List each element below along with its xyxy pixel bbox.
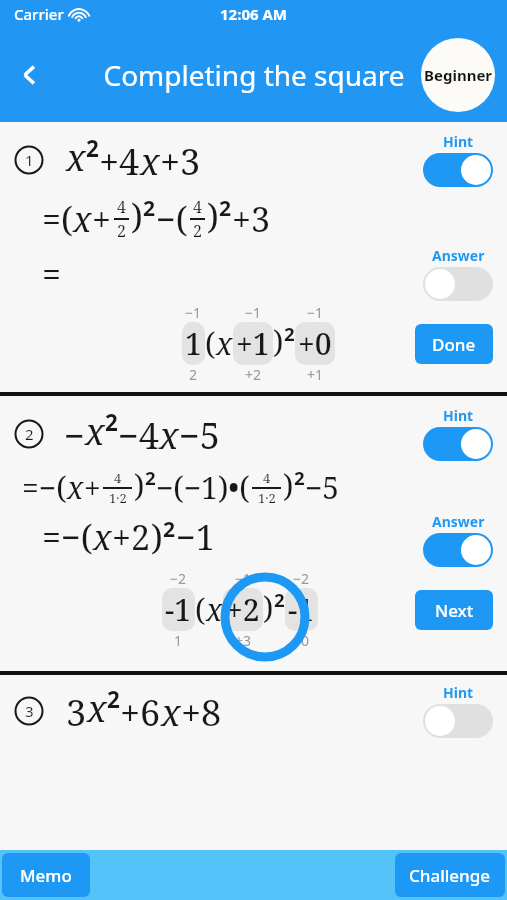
button[interactable]: Hint: [423, 153, 493, 187]
button[interactable]: +1: [233, 322, 273, 365]
staticText: Answer: [432, 246, 485, 265]
staticText: +2: [112, 514, 151, 560]
staticText: Memo: [20, 864, 72, 887]
staticText: x: [216, 323, 233, 364]
staticText: 2: [25, 424, 34, 444]
button[interactable]: -1: [162, 588, 195, 631]
staticText: =(: [42, 196, 73, 242]
staticText: =−(: [22, 467, 67, 508]
staticText: Challenge: [409, 864, 491, 887]
staticText: x: [85, 407, 105, 456]
staticText: Next: [435, 599, 474, 622]
staticText: 2: [143, 193, 156, 222]
staticText: x: [161, 688, 181, 737]
staticText: ): [207, 193, 219, 239]
staticText: −1: [235, 569, 252, 588]
staticText: 2: [86, 133, 99, 163]
staticText: +3: [160, 137, 201, 186]
staticText: 2: [189, 365, 198, 384]
button[interactable]: Challenge: [395, 853, 505, 897]
staticText: −4: [118, 411, 159, 460]
staticText: Beginner: [424, 65, 493, 85]
staticText: Answer: [432, 512, 485, 531]
button[interactable]: Hint: [423, 427, 493, 461]
staticText: =: [42, 251, 62, 297]
staticText: +3: [232, 196, 271, 242]
staticText: 2: [145, 465, 156, 490]
staticText: x: [87, 684, 107, 733]
staticText: =−(: [42, 514, 93, 560]
button[interactable]: 1: [182, 322, 205, 365]
staticText: ): [151, 514, 163, 560]
staticText: 3: [25, 701, 34, 721]
staticText: x: [67, 467, 84, 508]
staticText: x: [140, 137, 160, 186]
staticText: +3: [235, 631, 252, 650]
staticText: 2: [107, 684, 120, 714]
staticText: −2: [170, 569, 187, 588]
button[interactable]: Hint: [423, 704, 493, 738]
staticText: −5: [179, 411, 220, 460]
staticText: −1: [307, 303, 324, 322]
staticText: -1: [165, 589, 192, 630]
button[interactable]: Back: [8, 53, 52, 97]
staticText: Done: [432, 333, 476, 356]
staticText: Hint: [443, 683, 474, 702]
staticText: Hint: [443, 132, 474, 151]
staticText: 2: [294, 465, 305, 490]
staticText: ): [273, 321, 284, 362]
button[interactable]: Beginner: [421, 38, 495, 112]
staticText: 2: [274, 587, 285, 612]
staticText: 1: [25, 150, 34, 170]
staticText: +1: [307, 365, 324, 384]
staticText: +1: [236, 323, 270, 364]
staticText: 1·2: [109, 489, 127, 507]
staticText: Carrier: [14, 4, 64, 24]
staticText: −1: [176, 514, 215, 560]
staticText: 4: [114, 469, 122, 487]
staticText: ): [263, 587, 274, 628]
button[interactable]: Next: [415, 590, 493, 630]
staticText: −1: [185, 303, 202, 322]
staticText: x: [159, 411, 179, 460]
staticText: 2: [219, 193, 232, 222]
staticText: 1·2: [258, 489, 276, 507]
staticText: −(−1)•(: [156, 467, 250, 508]
staticText: −(: [156, 196, 188, 242]
staticText: −: [64, 411, 85, 460]
staticText: (: [195, 589, 206, 630]
staticText: 2: [193, 220, 202, 242]
staticText: 4: [263, 469, 271, 487]
button[interactable]: +0: [295, 322, 335, 365]
staticText: ): [131, 193, 143, 239]
staticText: -1: [288, 589, 315, 630]
staticText: Hint: [443, 406, 474, 425]
staticText: −2: [293, 569, 310, 588]
staticText: Completing the square: [103, 56, 405, 94]
staticText: x: [206, 589, 223, 630]
staticText: (: [205, 323, 216, 364]
button[interactable]: +2: [223, 588, 263, 631]
button[interactable]: Answer: [423, 267, 493, 301]
staticText: +8: [181, 688, 222, 737]
staticText: 2: [117, 220, 126, 242]
staticText: 4: [193, 196, 202, 218]
staticText: +2: [245, 365, 262, 384]
staticText: 1: [185, 323, 202, 364]
staticText: +: [84, 467, 101, 508]
staticText: 2: [163, 514, 176, 543]
staticText: +2: [226, 589, 260, 630]
button[interactable]: Memo: [2, 853, 90, 897]
staticText: x: [66, 133, 86, 182]
staticText: x: [73, 196, 92, 242]
button[interactable]: -1: [285, 588, 318, 631]
staticText: 4: [117, 196, 126, 218]
staticText: +0: [298, 323, 332, 364]
staticText: −1: [245, 303, 262, 322]
button[interactable]: Answer: [423, 533, 493, 567]
button[interactable]: Done: [415, 324, 493, 364]
staticText: +6: [120, 688, 161, 737]
staticText: 12:06 AM: [220, 4, 287, 24]
staticText: +4: [99, 137, 140, 186]
staticText: 2: [105, 407, 118, 437]
